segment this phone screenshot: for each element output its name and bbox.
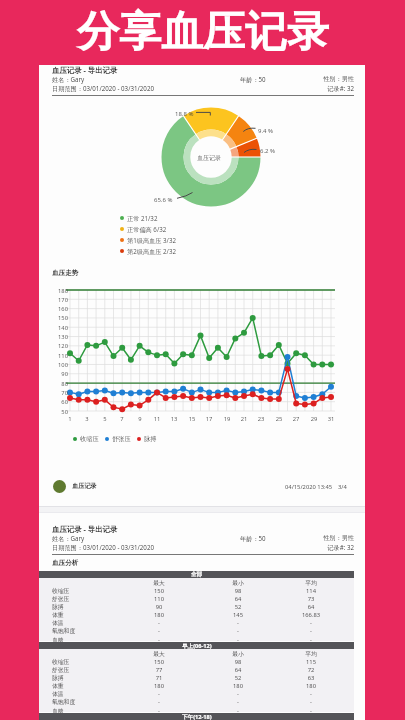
staticText: 记录#: 32 bbox=[52, 84, 354, 92]
staticText: 正常 21/32 bbox=[127, 214, 158, 222]
staticText: 全部 bbox=[191, 571, 203, 578]
staticText: 31 bbox=[321, 415, 341, 423]
staticText: 150 bbox=[43, 314, 68, 322]
staticText: 98 bbox=[218, 587, 258, 595]
staticText: 04/15/2020 13:45 bbox=[285, 483, 333, 491]
staticText: 最大 bbox=[139, 579, 179, 586]
staticText: 115 bbox=[291, 658, 331, 666]
staticText: 脉搏 bbox=[52, 674, 64, 681]
staticText: 72 bbox=[291, 666, 331, 674]
staticText: 27 bbox=[286, 415, 306, 423]
staticText: 19 bbox=[217, 415, 237, 423]
staticText: 年龄：50 bbox=[240, 534, 266, 542]
staticText: 血压记录 - 导出记录 bbox=[52, 524, 118, 534]
staticText: 第2级高血压 2/32 bbox=[127, 247, 177, 255]
staticText: 90 bbox=[139, 603, 179, 611]
staticText: 收缩压 bbox=[52, 658, 70, 665]
staticText: 166.83 bbox=[291, 611, 331, 619]
staticText: 平均 bbox=[291, 579, 331, 586]
staticText: 姓名：Gary bbox=[52, 534, 85, 542]
staticText: 血压记录 bbox=[72, 482, 97, 490]
staticText: 180 bbox=[291, 682, 331, 690]
staticText: 下午(12-18) bbox=[182, 713, 212, 720]
staticText: - bbox=[139, 698, 179, 706]
staticText: 氧饱和度 bbox=[52, 627, 76, 634]
staticText: 160 bbox=[43, 305, 68, 313]
staticText: 脉搏 bbox=[52, 603, 64, 610]
staticText: - bbox=[139, 619, 179, 627]
staticText: - bbox=[218, 690, 258, 698]
staticText: 记录#: 32 bbox=[52, 543, 354, 551]
staticText: 体温 bbox=[52, 690, 64, 697]
staticText: 64 bbox=[291, 603, 331, 611]
staticText: 71 bbox=[139, 674, 179, 682]
staticText: - bbox=[218, 707, 258, 715]
staticText: 180 bbox=[139, 682, 179, 690]
staticText: - bbox=[139, 636, 179, 644]
staticText: 1 bbox=[60, 415, 80, 423]
staticText: 11 bbox=[147, 415, 167, 423]
staticText: 50 bbox=[43, 408, 68, 416]
staticText: 60 bbox=[43, 398, 68, 406]
staticText: - bbox=[291, 636, 331, 644]
staticText: 血糖 bbox=[52, 636, 64, 643]
staticText: - bbox=[291, 698, 331, 706]
staticText: 80 bbox=[43, 380, 68, 388]
staticText: 日期范围：03/01/2020 - 03/31/2020 bbox=[52, 543, 154, 551]
staticText: 140 bbox=[43, 324, 68, 332]
staticText: - bbox=[139, 690, 179, 698]
staticText: 9.4 % bbox=[258, 127, 274, 135]
staticText: 3 bbox=[77, 415, 97, 423]
staticText: 5 bbox=[95, 415, 115, 423]
staticText: 180 bbox=[43, 287, 68, 295]
staticText: 早上(06-12) bbox=[182, 642, 212, 649]
staticText: - bbox=[291, 707, 331, 715]
staticText: 6.2 % bbox=[260, 147, 276, 155]
staticText: 最小 bbox=[218, 650, 258, 657]
staticText: 血压走势 bbox=[52, 269, 79, 277]
staticText: 舒张压 bbox=[52, 595, 70, 602]
staticText: 70 bbox=[43, 389, 68, 397]
staticText: 114 bbox=[291, 587, 331, 595]
staticText: - bbox=[218, 698, 258, 706]
staticText: 18.8 % bbox=[175, 110, 194, 118]
staticText: 65.6 % bbox=[154, 196, 173, 204]
staticText: 145 bbox=[218, 611, 258, 619]
staticText: 17 bbox=[199, 415, 219, 423]
staticText: 性别：男性 bbox=[52, 534, 354, 542]
staticText: 舒张压 bbox=[112, 435, 131, 443]
staticText: 9 bbox=[130, 415, 150, 423]
staticText: 100 bbox=[43, 361, 68, 369]
staticText: 98 bbox=[218, 658, 258, 666]
staticText: 最大 bbox=[139, 650, 179, 657]
staticText: 体重 bbox=[52, 682, 64, 689]
staticText: 77 bbox=[139, 666, 179, 674]
staticText: 最小 bbox=[218, 579, 258, 586]
staticText: 血压记录 bbox=[197, 154, 221, 162]
staticText: 120 bbox=[43, 342, 68, 350]
staticText: 110 bbox=[43, 352, 68, 360]
staticText: 73 bbox=[291, 595, 331, 603]
staticText: 150 bbox=[139, 658, 179, 666]
staticText: 52 bbox=[218, 603, 258, 611]
staticText: 分享血压记录 bbox=[77, 6, 329, 59]
staticText: 64 bbox=[218, 595, 258, 603]
staticText: - bbox=[291, 627, 331, 635]
staticText: 血糖 bbox=[52, 707, 64, 714]
staticText: 脉搏 bbox=[144, 435, 157, 443]
staticText: 日期范围：03/01/2020 - 03/31/2020 bbox=[52, 84, 154, 92]
staticText: 13 bbox=[164, 415, 184, 423]
staticText: 64 bbox=[218, 666, 258, 674]
staticText: 21 bbox=[234, 415, 254, 423]
staticText: - bbox=[139, 627, 179, 635]
staticText: 90 bbox=[43, 370, 68, 378]
staticText: 130 bbox=[43, 333, 68, 341]
staticText: - bbox=[218, 619, 258, 627]
staticText: 舒张压 bbox=[52, 666, 70, 673]
staticText: 180 bbox=[139, 611, 179, 619]
staticText: 平均 bbox=[291, 650, 331, 657]
staticText: 52 bbox=[218, 674, 258, 682]
staticText: 110 bbox=[139, 595, 179, 603]
staticText: 150 bbox=[139, 587, 179, 595]
staticText: 年龄：50 bbox=[240, 75, 266, 83]
